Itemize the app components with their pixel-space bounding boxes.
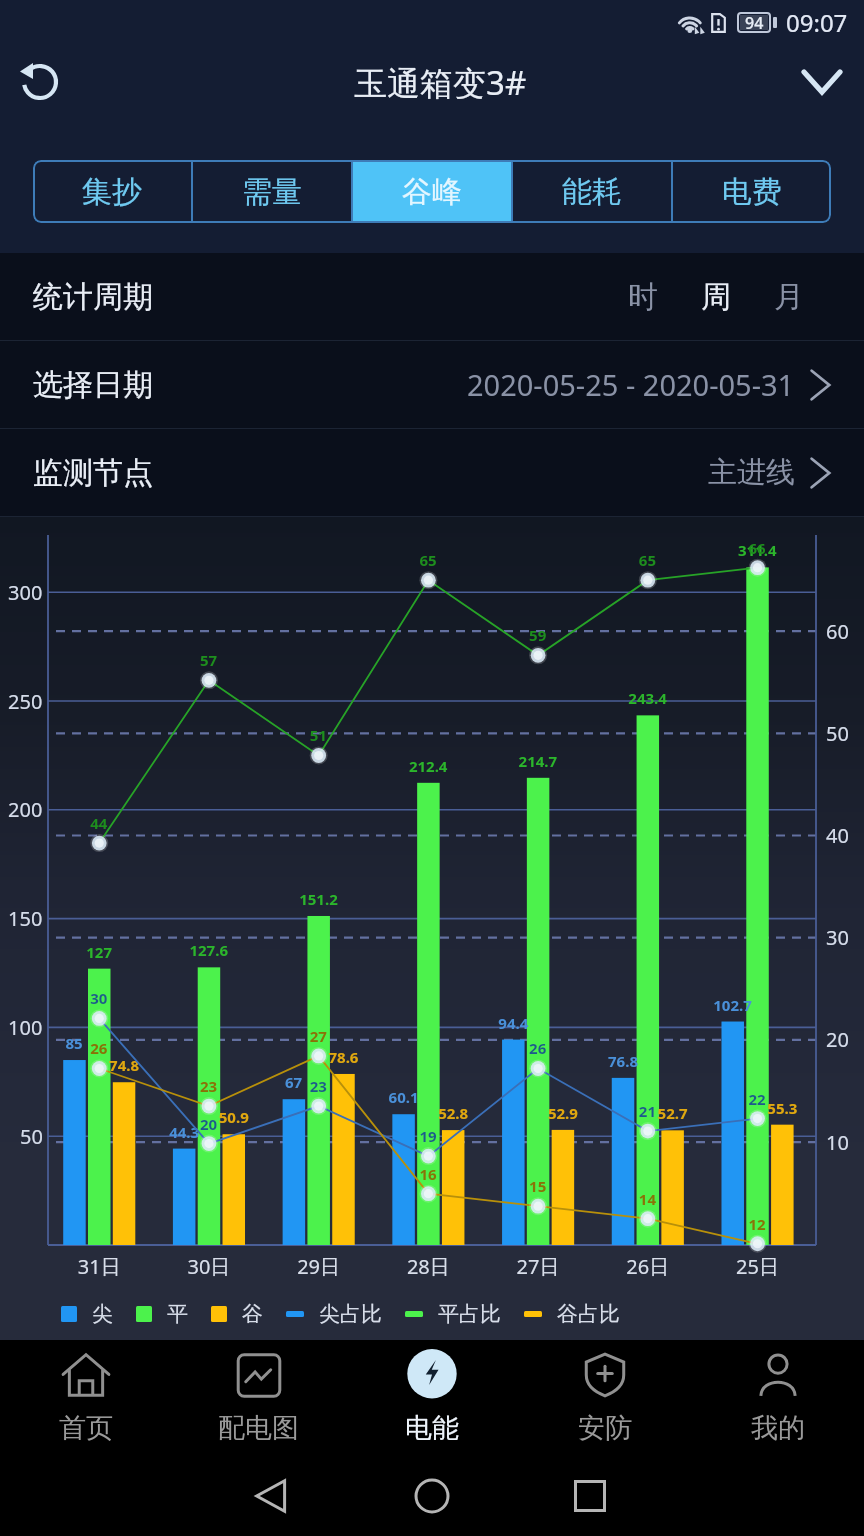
staticText: 周: [701, 278, 731, 316]
staticText: 配电图: [218, 1411, 299, 1445]
button[interactable]: 周: [679, 266, 752, 328]
button[interactable]: 展开: [792, 52, 852, 112]
staticText: 主进线: [708, 454, 795, 491]
button[interactable]: 返回: [231, 1456, 311, 1536]
staticText: 月: [774, 278, 804, 316]
staticText: 94: [745, 12, 764, 33]
staticText: 电能: [405, 1411, 459, 1445]
button[interactable]: 配电图: [172, 1340, 345, 1456]
button[interactable]: 选择日期: [0, 341, 864, 428]
button[interactable]: 能耗: [513, 160, 671, 223]
button[interactable]: 需量: [193, 160, 351, 223]
button[interactable]: 时: [606, 266, 679, 328]
staticText: 集抄: [82, 173, 142, 211]
button[interactable]: 统计周期: [0, 253, 864, 340]
staticText: 09:07: [786, 6, 848, 39]
button[interactable]: 刷新: [10, 52, 70, 112]
button[interactable]: 主页: [392, 1456, 472, 1536]
staticText: 我的: [751, 1411, 805, 1445]
button[interactable]: 我的: [691, 1340, 864, 1456]
staticText: 需量: [242, 173, 302, 211]
button[interactable]: 最近任务: [550, 1456, 630, 1536]
button[interactable]: 月: [752, 266, 825, 328]
staticText: 首页: [59, 1411, 113, 1445]
button[interactable]: 谷峰: [353, 160, 511, 223]
button[interactable]: 集抄: [33, 160, 191, 223]
button[interactable]: 安防: [518, 1340, 691, 1456]
staticText: 安防: [578, 1411, 632, 1445]
button[interactable]: 监测节点: [0, 429, 864, 516]
staticText: 玉通箱变3#: [354, 60, 527, 105]
button[interactable]: 电费: [673, 160, 831, 223]
staticText: 选择日期: [33, 366, 153, 404]
button[interactable]: 首页: [0, 1340, 172, 1456]
staticText: 电费: [722, 173, 782, 211]
staticText: 谷峰: [402, 173, 462, 211]
staticText: 2020-05-25 - 2020-05-31: [467, 365, 795, 404]
staticText: 统计周期: [33, 278, 153, 316]
button[interactable]: 电能: [345, 1340, 518, 1456]
staticText: 时: [628, 278, 658, 316]
staticText: 能耗: [562, 173, 622, 211]
staticText: 监测节点: [33, 454, 153, 492]
